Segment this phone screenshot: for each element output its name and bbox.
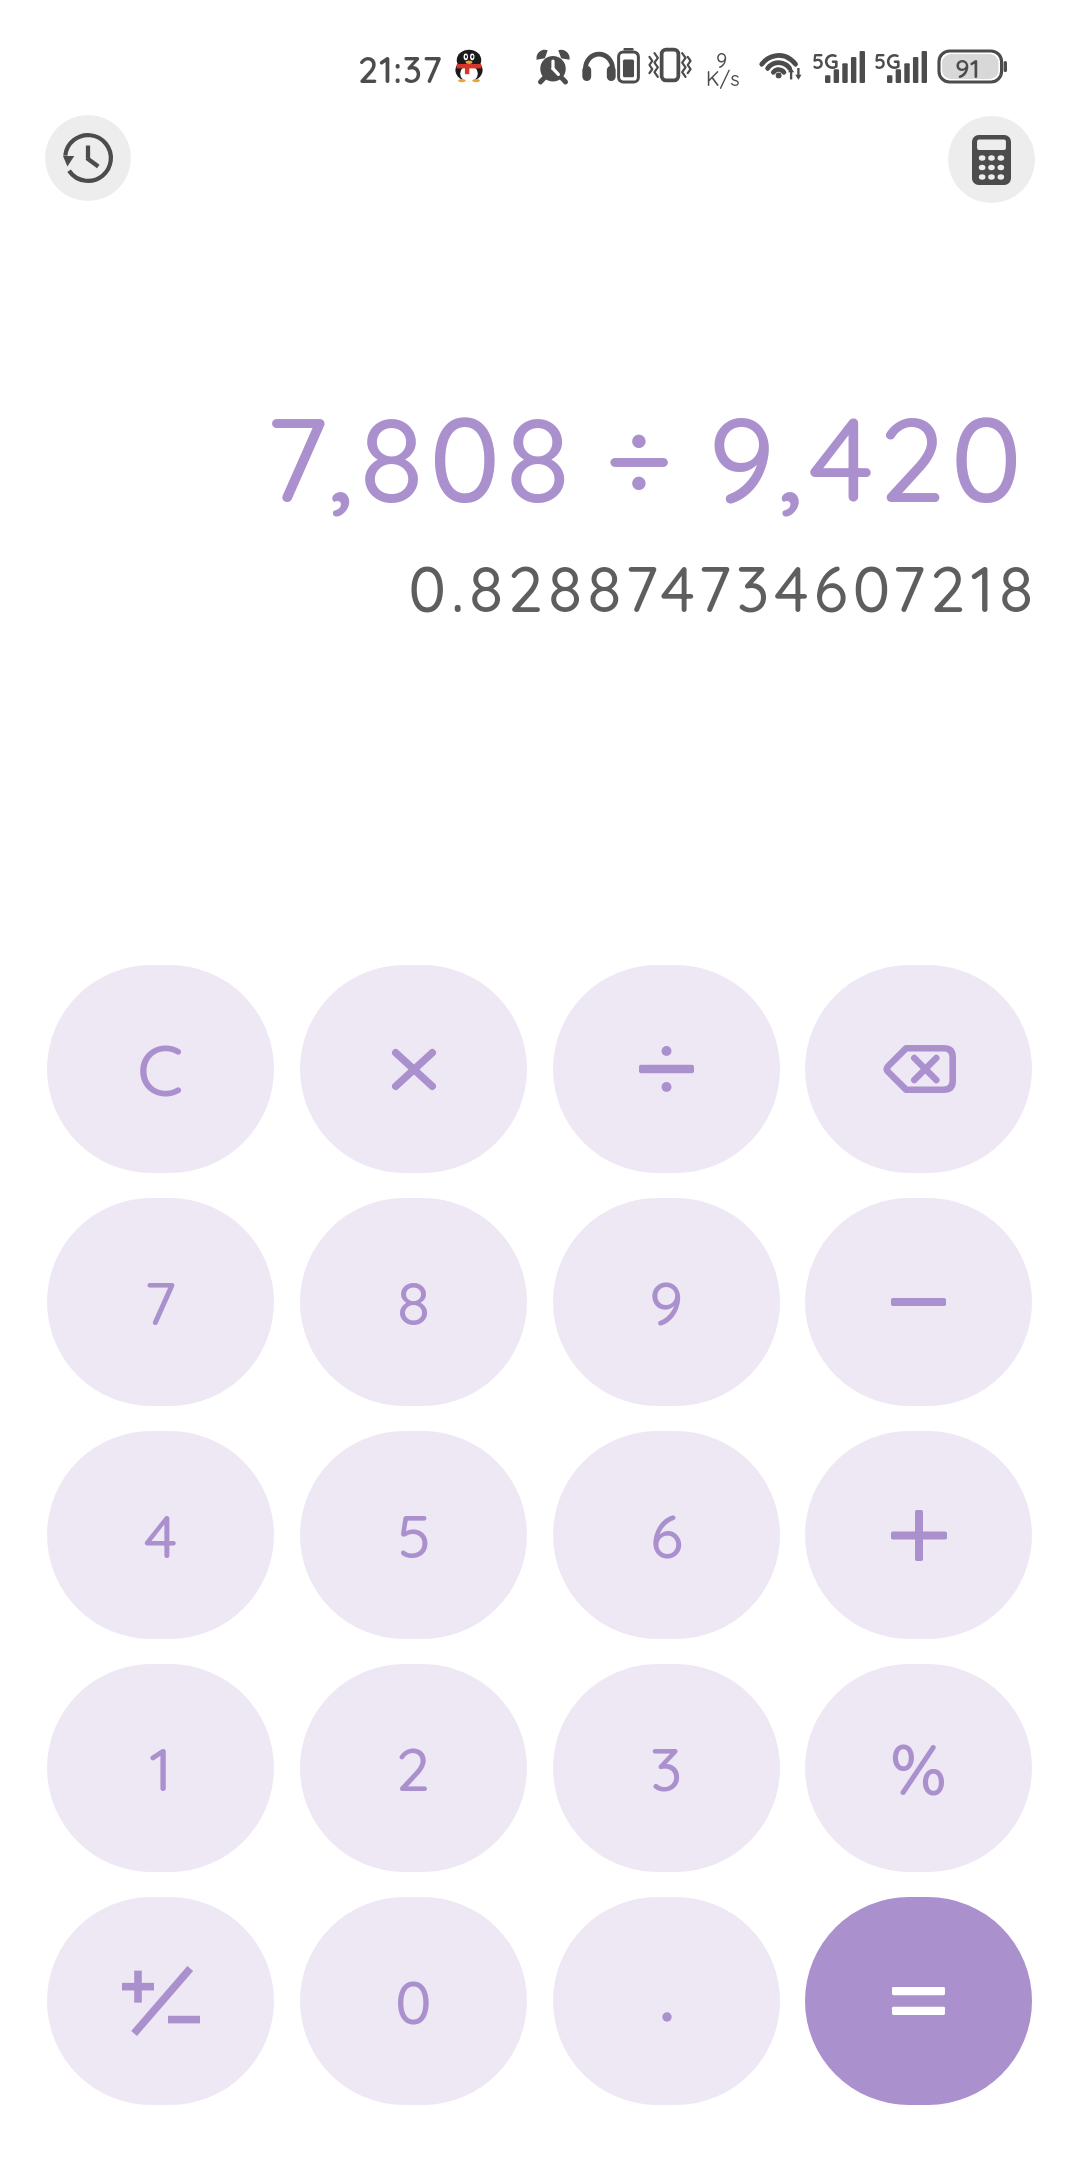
- button[interactable]: Divide: [553, 965, 780, 1173]
- button[interactable]: Backspace: [805, 965, 1032, 1173]
- staticText: 0.828874734607218: [0, 549, 1038, 628]
- staticText: 7,808 ÷ 9,420: [0, 383, 1027, 532]
- button[interactable]: 4: [47, 1431, 274, 1639]
- button[interactable]: 7: [47, 1198, 274, 1406]
- staticText: %: [890, 1723, 947, 1813]
- button[interactable]: Equals: [805, 1897, 1032, 2105]
- button[interactable]: Plus minus: [47, 1897, 274, 2105]
- staticText: K/s: [706, 66, 740, 91]
- staticText: 6: [650, 1497, 684, 1573]
- staticText: 4: [144, 1497, 178, 1573]
- button[interactable]: [553, 1897, 780, 2105]
- button[interactable]: C: [47, 965, 274, 1173]
- staticText: 3: [650, 1730, 683, 1806]
- button[interactable]: %: [805, 1664, 1032, 1872]
- button[interactable]: 9: [553, 1198, 780, 1406]
- staticText: 5G: [812, 48, 839, 74]
- staticText: 8: [397, 1264, 431, 1340]
- staticText: 9: [716, 48, 728, 73]
- staticText: 21:37: [358, 47, 443, 92]
- button[interactable]: Subtract: [805, 1198, 1032, 1406]
- button[interactable]: Add: [805, 1431, 1032, 1639]
- staticText: 0: [395, 1963, 432, 2039]
- staticText: 1: [149, 1730, 172, 1806]
- button[interactable]: History: [45, 115, 131, 201]
- staticText: 9: [649, 1264, 684, 1340]
- staticText: 2: [396, 1730, 431, 1806]
- staticText: 5G: [874, 48, 901, 74]
- staticText: C: [137, 1024, 184, 1114]
- button[interactable]: 5: [300, 1431, 527, 1639]
- button[interactable]: 1: [47, 1664, 274, 1872]
- button[interactable]: 0: [300, 1897, 527, 2105]
- button[interactable]: 2: [300, 1664, 527, 1872]
- staticText: 7: [144, 1264, 177, 1340]
- staticText: 5: [397, 1497, 431, 1573]
- staticText: 91: [955, 52, 980, 85]
- button[interactable]: 8: [300, 1198, 527, 1406]
- button[interactable]: Scientific calculator: [948, 116, 1035, 203]
- button[interactable]: 6: [553, 1431, 780, 1639]
- button[interactable]: 3: [553, 1664, 780, 1872]
- button[interactable]: Multiply: [300, 965, 527, 1173]
